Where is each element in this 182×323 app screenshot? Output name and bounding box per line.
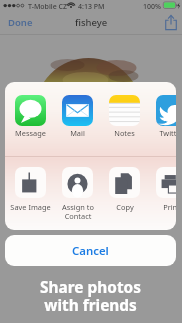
button[interactable]: Share bbox=[162, 12, 180, 33]
staticText: Save Image bbox=[10, 202, 51, 212]
button[interactable]: Done bbox=[4, 13, 37, 32]
button[interactable]: Cancel bbox=[5, 235, 176, 266]
button[interactable]: Message bbox=[7, 95, 54, 138]
button[interactable]: Mail bbox=[54, 95, 101, 138]
staticText: Twitter bbox=[159, 128, 176, 138]
staticText: Notes bbox=[114, 128, 135, 138]
button[interactable]: Twitter bbox=[148, 95, 176, 138]
staticText: T-Mobile CZ bbox=[28, 2, 68, 12]
staticText: fisheye bbox=[75, 16, 108, 29]
staticText: Copy bbox=[116, 202, 134, 212]
staticText: Message bbox=[15, 128, 46, 138]
staticText: Mail bbox=[70, 128, 85, 138]
staticText: 100% bbox=[143, 2, 161, 12]
staticText: 4:13 PM bbox=[78, 2, 105, 12]
button[interactable]: Save Image bbox=[7, 167, 54, 212]
button[interactable]: Notes bbox=[101, 95, 148, 138]
button[interactable]: Assign to Contact bbox=[54, 167, 101, 221]
staticText: Share photos with friends bbox=[40, 277, 141, 316]
staticText: Print bbox=[163, 202, 176, 212]
staticText: Assign to Contact bbox=[62, 202, 94, 221]
staticText: Cancel bbox=[72, 243, 109, 259]
staticText: Done bbox=[8, 16, 33, 29]
button[interactable]: Print bbox=[148, 167, 176, 212]
button[interactable]: Copy bbox=[101, 167, 148, 212]
